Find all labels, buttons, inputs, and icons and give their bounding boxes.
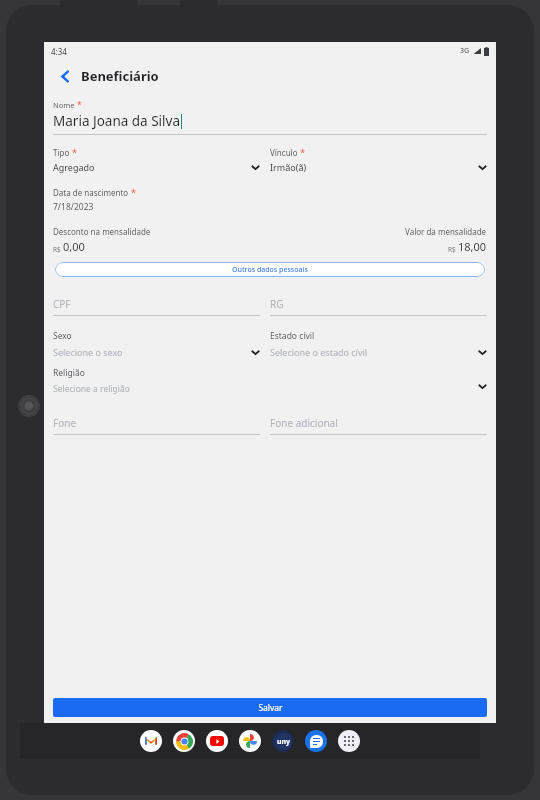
staticText: * xyxy=(131,186,136,198)
staticText: * xyxy=(300,146,305,158)
staticText: Valor da mensalidade xyxy=(405,226,487,237)
button[interactable]: Outros dados pessoais xyxy=(55,262,485,277)
button[interactable]: CPF xyxy=(53,297,260,316)
staticText: Outros dados pessoais xyxy=(232,265,308,275)
staticText: Sexo xyxy=(53,330,72,342)
button[interactable]: Selecione o sexo xyxy=(53,346,260,358)
button[interactable]: Voltar xyxy=(54,65,76,87)
staticText: Beneficiário xyxy=(81,67,159,85)
button[interactable]: Gmail xyxy=(140,730,162,752)
staticText: Data de nascimento xyxy=(53,187,129,198)
staticText: Estado cívil xyxy=(270,330,315,342)
staticText: 4:34 xyxy=(51,46,67,57)
button[interactable]: Mensagens xyxy=(305,730,327,752)
staticText: 7/18/2023 xyxy=(53,201,94,213)
button[interactable]: Chrome xyxy=(173,730,195,752)
staticText: Fone adicional xyxy=(270,416,338,430)
staticText: uny xyxy=(277,737,291,747)
staticText: Selecione a religião xyxy=(53,383,130,395)
button[interactable]: Irmão(ã) xyxy=(270,161,487,173)
staticText: CPF xyxy=(53,297,71,311)
staticText: R$ xyxy=(53,245,61,254)
staticText: Selecione o estado cívil xyxy=(270,346,478,358)
staticText: Nome xyxy=(53,100,75,110)
staticText: Irmão(ã) xyxy=(270,161,478,173)
staticText: Desconto na mensalidade xyxy=(53,226,151,237)
staticText: Selecione o sexo xyxy=(53,346,251,358)
staticText: Maria Joana da Silva xyxy=(53,112,181,130)
staticText: * xyxy=(77,99,82,111)
button[interactable]: Uny xyxy=(272,730,294,752)
button[interactable]: Salvar xyxy=(53,698,487,717)
button[interactable]: Fone xyxy=(53,416,260,435)
button[interactable]: RG xyxy=(270,297,487,316)
button[interactable]: Fone adicional xyxy=(270,416,487,435)
staticText: Religião xyxy=(53,367,85,379)
staticText: 0,00 xyxy=(63,239,85,254)
staticText: 18,00 xyxy=(458,239,487,254)
staticText: Agregado xyxy=(53,161,251,173)
staticText: * xyxy=(72,146,77,158)
button[interactable]: YouTube xyxy=(206,730,228,752)
staticText: Salvar xyxy=(258,702,283,714)
button[interactable]: Todos os apps xyxy=(338,730,360,752)
staticText: Vínculo xyxy=(270,147,298,158)
staticText: 3G xyxy=(460,46,470,56)
staticText: RG xyxy=(270,297,284,311)
button[interactable]: Agregado xyxy=(53,161,260,173)
button[interactable]: Selecionar religião xyxy=(270,380,487,392)
staticText: Fone xyxy=(53,416,77,430)
button[interactable]: Google Fotos xyxy=(239,730,261,752)
staticText: R$ xyxy=(448,245,456,254)
button[interactable]: Selecione o estado cívil xyxy=(270,346,487,358)
staticText: Tipo xyxy=(53,147,70,158)
